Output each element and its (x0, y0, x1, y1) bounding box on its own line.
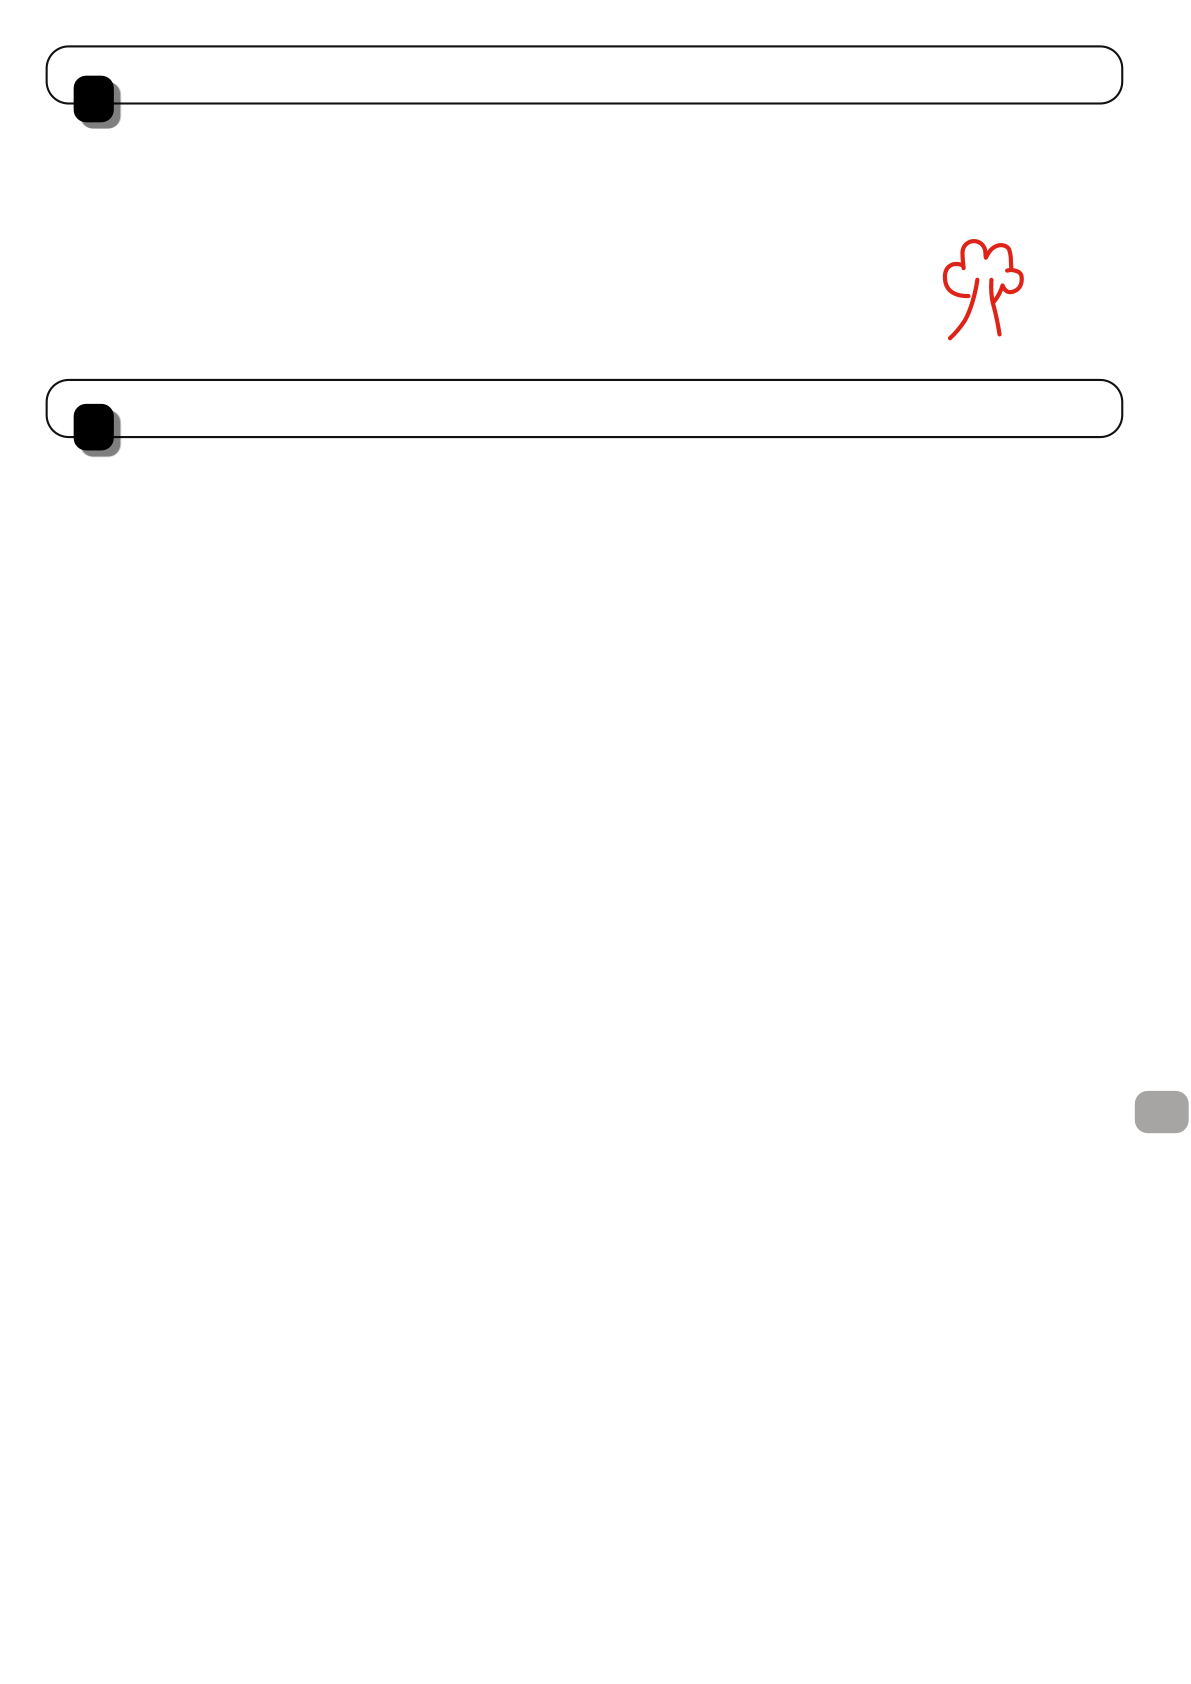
button[interactable]: First field (47, 46, 1122, 103)
button[interactable]: Second field (47, 380, 1122, 437)
button[interactable]: Second field action (74, 404, 114, 450)
button[interactable]: First field action (74, 76, 114, 122)
